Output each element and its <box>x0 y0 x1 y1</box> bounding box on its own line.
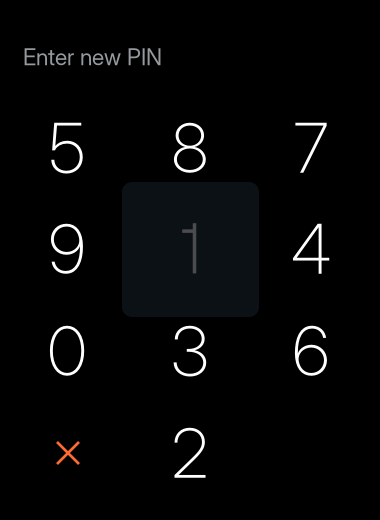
button[interactable]: 3 <box>132 302 248 400</box>
staticText: 8 <box>171 107 208 189</box>
button[interactable]: 9 <box>9 200 125 298</box>
button[interactable]: 7 <box>253 99 369 197</box>
button[interactable]: 5 <box>9 99 125 197</box>
button[interactable]: 8 <box>132 99 248 197</box>
staticText: 2 <box>171 412 208 494</box>
staticText: 5 <box>49 107 85 189</box>
button[interactable]: 0 <box>9 302 125 400</box>
staticText: 6 <box>292 310 329 392</box>
staticText: 0 <box>47 310 86 392</box>
button[interactable]: Delete <box>10 404 126 502</box>
staticText: Enter new PIN <box>23 43 162 71</box>
staticText: 7 <box>293 107 328 189</box>
button[interactable] <box>122 182 259 317</box>
button[interactable]: 6 <box>253 302 369 400</box>
staticText: 9 <box>48 208 85 290</box>
button[interactable]: 2 <box>132 404 248 502</box>
staticText: 4 <box>291 208 331 290</box>
staticText: 3 <box>171 310 209 392</box>
button[interactable]: 4 <box>253 200 369 298</box>
